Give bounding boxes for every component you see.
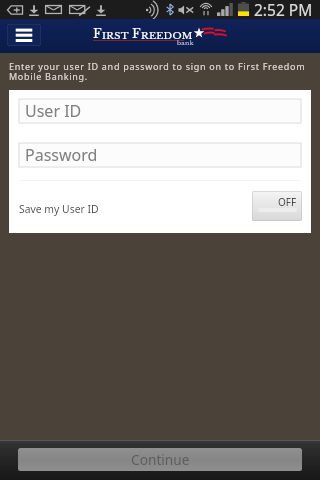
staticText: Continue — [131, 450, 190, 469]
staticText: OFF — [278, 195, 297, 209]
staticText: F — [93, 26, 102, 42]
button[interactable]: Save my User ID off — [252, 191, 302, 221]
staticText: bank — [177, 39, 194, 47]
staticText: 2:52 PM — [254, 0, 313, 18]
button[interactable]: Menu — [7, 24, 41, 46]
staticText: Save my User ID — [19, 202, 99, 216]
staticText: REEDOM — [141, 30, 193, 42]
staticText: User ID — [25, 100, 82, 122]
staticText: Enter your user ID and password to sign … — [9, 60, 306, 82]
button[interactable]: User ID — [19, 99, 301, 123]
staticText: Password — [25, 144, 98, 166]
button[interactable]: Continue — [18, 448, 302, 471]
staticText: F — [132, 26, 141, 42]
button[interactable]: Password — [19, 143, 301, 167]
staticText: IRST — [102, 30, 129, 42]
